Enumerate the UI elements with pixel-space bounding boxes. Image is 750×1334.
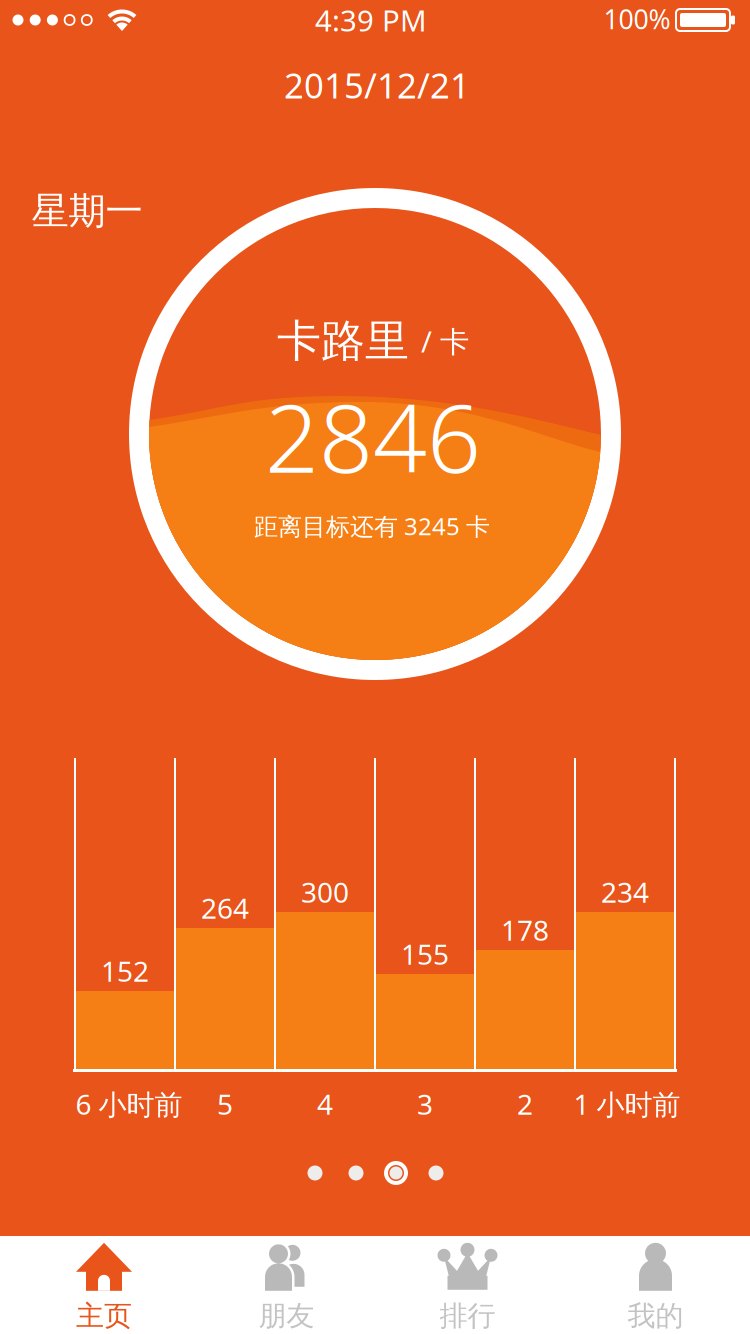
staticText: 2846 (265, 373, 481, 499)
staticText: 100% (603, 1, 670, 37)
staticText: 2 (517, 1085, 533, 1123)
staticText: 300 (301, 873, 349, 911)
staticText: 朋友 (258, 1299, 314, 1333)
staticText: 152 (101, 952, 149, 990)
staticText: 距离目标还有 3245 卡 (254, 510, 490, 542)
staticText: 155 (401, 935, 449, 973)
staticText: 234 (601, 873, 649, 911)
staticText: 卡路里 (277, 314, 409, 368)
staticText: 主页 (76, 1299, 132, 1333)
staticText: 1 小时前 (573, 1085, 680, 1123)
staticText: / 卡 (421, 321, 469, 360)
staticText: 6 小时前 (75, 1085, 182, 1123)
staticText: 我的 (627, 1299, 683, 1333)
button[interactable]: 主页 (10, 1236, 198, 1334)
staticText: 4 (317, 1085, 333, 1123)
staticText: 3 (417, 1085, 433, 1123)
staticText: 178 (501, 911, 549, 949)
staticText: 星期一 (31, 188, 142, 234)
staticText: 5 (217, 1085, 233, 1123)
staticText: 264 (201, 889, 249, 927)
staticText: 2015/12/21 (284, 62, 470, 108)
button[interactable]: 排行 (374, 1236, 561, 1334)
staticText: 排行 (439, 1299, 495, 1333)
button[interactable]: 朋友 (193, 1236, 380, 1334)
button[interactable]: 我的 (562, 1236, 749, 1334)
staticText: 4:39 PM (315, 0, 427, 39)
